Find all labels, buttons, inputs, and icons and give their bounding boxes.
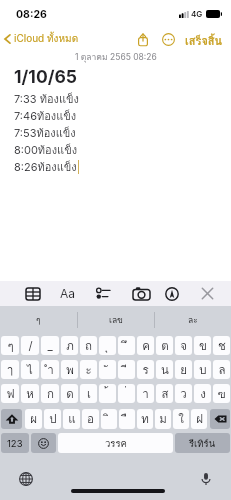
button[interactable]: ผ xyxy=(25,409,42,429)
staticText: Aa xyxy=(60,286,76,301)
button[interactable]: แ xyxy=(63,409,80,429)
button[interactable]: More options xyxy=(158,29,178,49)
button[interactable]: Change keyboard xyxy=(18,471,33,486)
staticText: ค xyxy=(142,337,150,355)
staticText: ภ xyxy=(66,337,74,355)
staticText: รีเทิร์น xyxy=(189,436,216,451)
button[interactable]: ำ xyxy=(41,360,59,379)
button[interactable]: ด xyxy=(61,384,78,403)
button[interactable]: ภ xyxy=(61,336,78,355)
button[interactable]: ี xyxy=(118,360,135,379)
staticText: ต xyxy=(161,337,169,355)
button[interactable]: ะ xyxy=(80,360,97,379)
button[interactable]: ค xyxy=(137,336,154,355)
staticText: _ xyxy=(47,339,53,353)
button[interactable]: ช xyxy=(213,336,230,355)
button[interactable]: เสร็จสิ้น xyxy=(182,28,226,50)
button[interactable]: ๅ xyxy=(1,360,19,379)
button[interactable]: ไ xyxy=(21,360,39,379)
staticText: 123 xyxy=(7,438,23,449)
button[interactable]: ล xyxy=(213,360,230,379)
button[interactable]: ุ xyxy=(99,336,116,355)
button[interactable]: พ xyxy=(61,360,78,379)
staticText: ร xyxy=(142,361,149,379)
button[interactable]: ึ xyxy=(118,336,135,355)
button[interactable]: Backspace xyxy=(210,409,230,429)
button[interactable]: ิ xyxy=(101,409,117,429)
button[interactable]: รีเทิร์น xyxy=(175,433,230,453)
button[interactable]: ฝ xyxy=(191,409,207,429)
staticText: 7:33 ท้องแข็ง xyxy=(14,90,79,107)
staticText: ว xyxy=(180,385,187,403)
button[interactable]: อ xyxy=(82,409,99,429)
button[interactable]: ย xyxy=(175,360,192,379)
staticText: / xyxy=(28,339,33,353)
staticText: จ xyxy=(180,337,187,355)
button[interactable]: ละ xyxy=(154,306,231,334)
button[interactable]: ป xyxy=(44,409,61,429)
button[interactable]: ื xyxy=(119,409,135,429)
button[interactable]: Close keyboard xyxy=(196,281,218,306)
button[interactable]: ว xyxy=(175,384,192,403)
button[interactable]: Checklist xyxy=(92,281,114,306)
staticText: 8:26ท้องแข็ง xyxy=(14,158,77,175)
button[interactable]: ง xyxy=(194,384,211,403)
button[interactable]: ่ xyxy=(118,384,135,403)
button[interactable]: Aa xyxy=(58,281,77,306)
staticText: ด xyxy=(66,385,74,403)
staticText: บ xyxy=(199,361,207,379)
staticText: ะ xyxy=(85,361,92,379)
button[interactable]: iCloud ทั้งหมด xyxy=(0,31,83,47)
staticText: ๆ xyxy=(7,337,14,355)
staticText: 4G xyxy=(191,9,203,19)
button[interactable]: วรรค xyxy=(58,433,173,453)
button[interactable]: ใ xyxy=(173,409,189,429)
staticText: ละ xyxy=(188,313,198,327)
button[interactable]: ั xyxy=(99,360,116,379)
staticText: 7:46ท้องแข็ง xyxy=(14,107,77,124)
staticText: 1 ตุลาคม 2565 08:26 xyxy=(75,50,157,64)
staticText: ำ xyxy=(47,361,54,379)
staticText: ไ xyxy=(27,361,33,379)
staticText: ล xyxy=(218,361,226,379)
button[interactable]: ๆ xyxy=(0,306,77,334)
button[interactable]: บ xyxy=(194,360,211,379)
button[interactable]: ้ xyxy=(99,384,116,403)
button[interactable]: ต xyxy=(156,336,173,355)
staticText: ฃ xyxy=(217,385,226,403)
button[interactable]: เ xyxy=(80,384,97,403)
button[interactable]: ฟ xyxy=(1,384,19,403)
button[interactable]: / xyxy=(21,336,39,355)
staticText: ๆ xyxy=(36,313,41,327)
button[interactable]: ข xyxy=(194,336,211,355)
button[interactable]: ท xyxy=(137,409,153,429)
staticText: 1/10/65 xyxy=(14,66,78,87)
button[interactable]: Share xyxy=(133,29,153,49)
staticText: ห xyxy=(26,385,34,403)
button[interactable]: ถ xyxy=(80,336,97,355)
staticText: ช xyxy=(218,337,226,355)
button[interactable]: Table xyxy=(22,281,44,306)
staticText: ย xyxy=(180,361,187,379)
button[interactable]: Emoji xyxy=(31,433,56,453)
staticText: ท xyxy=(141,410,149,428)
button[interactable]: น xyxy=(156,360,173,379)
button[interactable]: จ xyxy=(175,336,192,355)
button[interactable]: _ xyxy=(41,336,59,355)
button[interactable]: Shift xyxy=(1,409,22,429)
button[interactable]: ห xyxy=(21,384,39,403)
button[interactable]: ม xyxy=(155,409,171,429)
staticText: ใ xyxy=(178,410,184,428)
button[interactable]: 123 xyxy=(1,433,29,453)
button[interactable]: Dictation xyxy=(198,471,213,486)
button[interactable]: า xyxy=(137,384,154,403)
button[interactable]: Camera xyxy=(130,281,152,306)
button[interactable]: ๆ xyxy=(1,336,19,355)
button[interactable]: เลข xyxy=(77,306,154,334)
button[interactable]: Markup xyxy=(161,281,183,306)
button[interactable]: ก xyxy=(41,384,59,403)
button[interactable]: ฃ xyxy=(213,384,230,403)
button[interactable]: ร xyxy=(137,360,154,379)
button[interactable]: ส xyxy=(156,384,173,403)
staticText: ง xyxy=(200,385,206,403)
